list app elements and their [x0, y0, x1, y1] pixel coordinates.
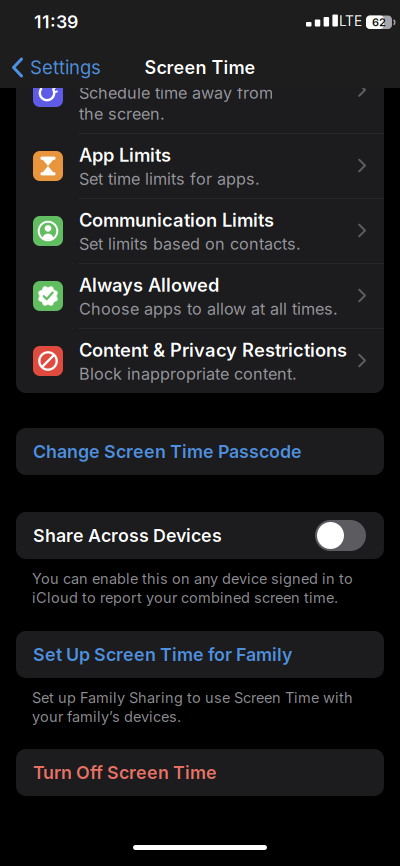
button[interactable]: Change Screen Time Passcode — [16, 428, 384, 475]
button[interactable]: Back — [12, 47, 101, 88]
button[interactable]: Share Across Devices — [315, 520, 366, 551]
staticText: Communication Limits — [79, 209, 274, 231]
button[interactable]: Turn Off Screen Time — [16, 749, 384, 796]
staticText: Settings — [30, 56, 101, 79]
staticText: Set up Family Sharing to use Screen Time… — [32, 689, 353, 706]
staticText: 62 — [372, 16, 386, 29]
staticText: LTE — [339, 13, 362, 30]
staticText: the screen. — [79, 104, 165, 124]
staticText: Set Up Screen Time for Family — [33, 644, 292, 665]
staticText: App Limits — [79, 144, 171, 166]
staticText: You can enable this on any device signed… — [32, 570, 353, 587]
staticText: 11:39 — [34, 11, 78, 32]
staticText: Block inappropriate content. — [79, 364, 297, 384]
staticText: Set time limits for apps. — [79, 169, 260, 189]
button[interactable]: Always Allowed — [16, 263, 384, 328]
button[interactable]: Communication Limits — [16, 198, 384, 263]
button[interactable]: App Limits — [16, 133, 384, 198]
staticText: Choose apps to allow at all times. — [79, 299, 338, 319]
staticText: iCloud to report your combined screen ti… — [32, 589, 338, 606]
staticText: Share Across Devices — [33, 525, 222, 546]
staticText: Always Allowed — [79, 274, 219, 296]
button[interactable]: Content & Privacy Restrictions — [16, 328, 384, 393]
button[interactable]: Schedule time away from — [16, 88, 384, 133]
staticText: Change Screen Time Passcode — [33, 441, 302, 462]
staticText: Turn Off Screen Time — [33, 762, 217, 783]
staticText: Content & Privacy Restrictions — [79, 339, 347, 361]
staticText: your family’s devices. — [32, 708, 181, 725]
staticText: Screen Time — [144, 57, 255, 78]
staticText: Set limits based on contacts. — [79, 234, 301, 254]
staticText: Schedule time away from — [79, 83, 273, 103]
button[interactable]: Set Up Screen Time for Family — [16, 631, 384, 678]
